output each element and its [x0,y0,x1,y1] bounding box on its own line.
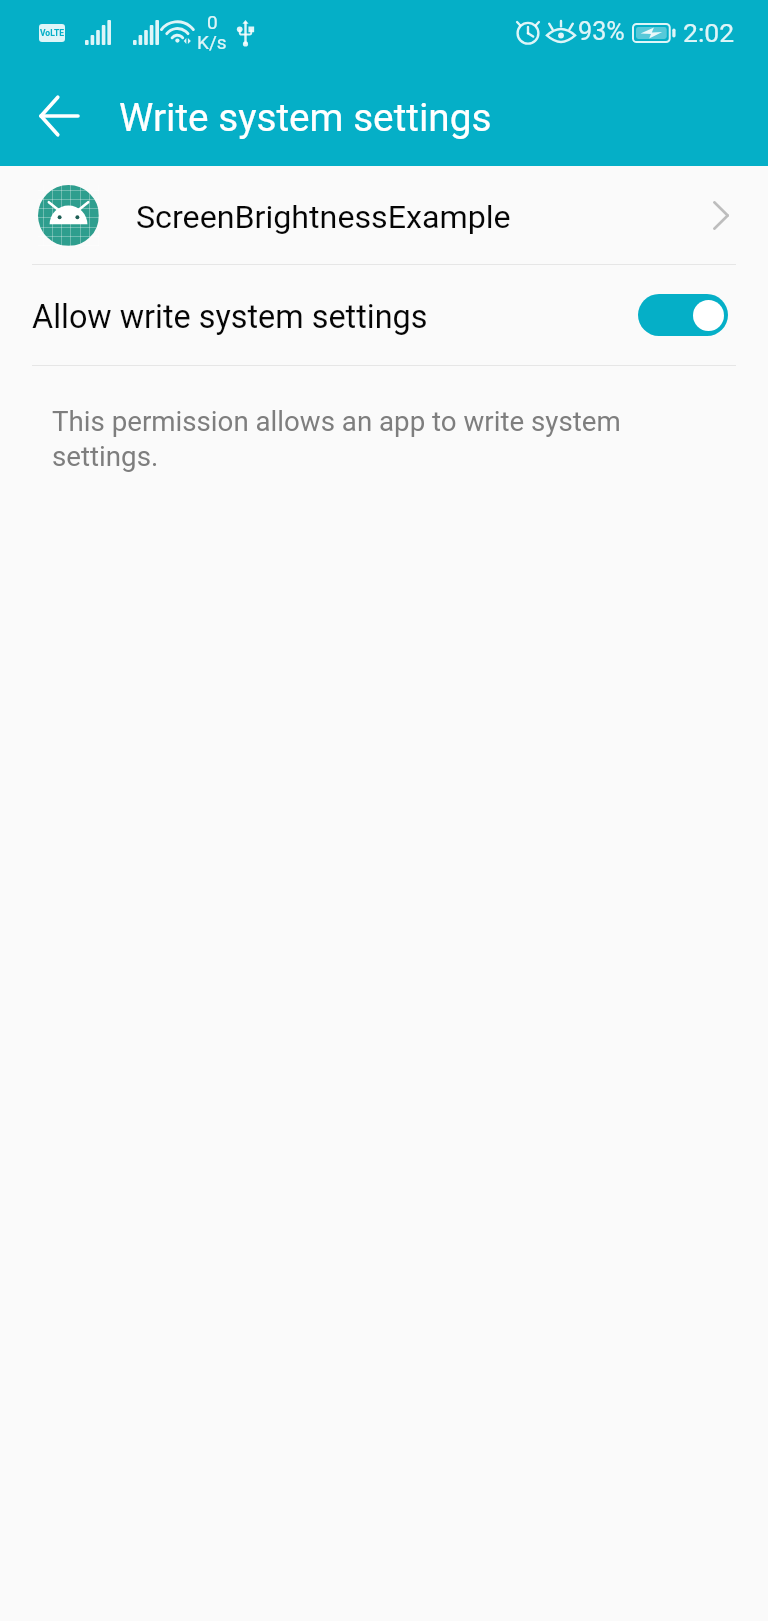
staticText: 2:02 [683,17,735,48]
button[interactable]: ScreenBrightnessExample [0,166,768,264]
staticText: settings. [52,440,159,472]
staticText: VoLTE [40,28,64,38]
button[interactable]: Allow write system settings [0,265,768,365]
staticText: K/s [197,31,227,53]
staticText: Write system settings [119,95,492,140]
staticText: Allow write system settings [32,298,428,336]
button[interactable]: App info [694,188,748,242]
staticText: ScreenBrightnessExample [136,198,511,236]
staticText: 93% [578,17,625,47]
staticText: 0 [207,11,218,33]
staticText: This permission allows an app to write s… [52,405,621,437]
button[interactable]: Allow write system settings [638,294,728,336]
button[interactable]: Navigate up [23,80,95,152]
